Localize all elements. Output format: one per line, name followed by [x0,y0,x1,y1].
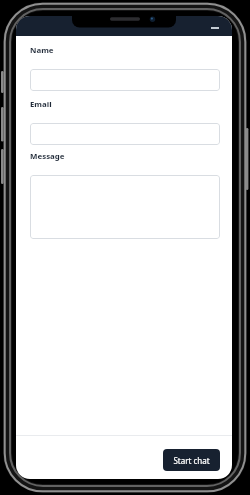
button[interactable]: Start chat [163,449,220,471]
button[interactable] [30,123,220,145]
staticText: Start chat [173,455,210,466]
button[interactable] [207,23,222,33]
staticText: Email [30,99,52,110]
button[interactable] [30,69,220,91]
button[interactable] [30,175,220,239]
staticText: Message [30,151,65,162]
staticText: Name [30,45,54,56]
